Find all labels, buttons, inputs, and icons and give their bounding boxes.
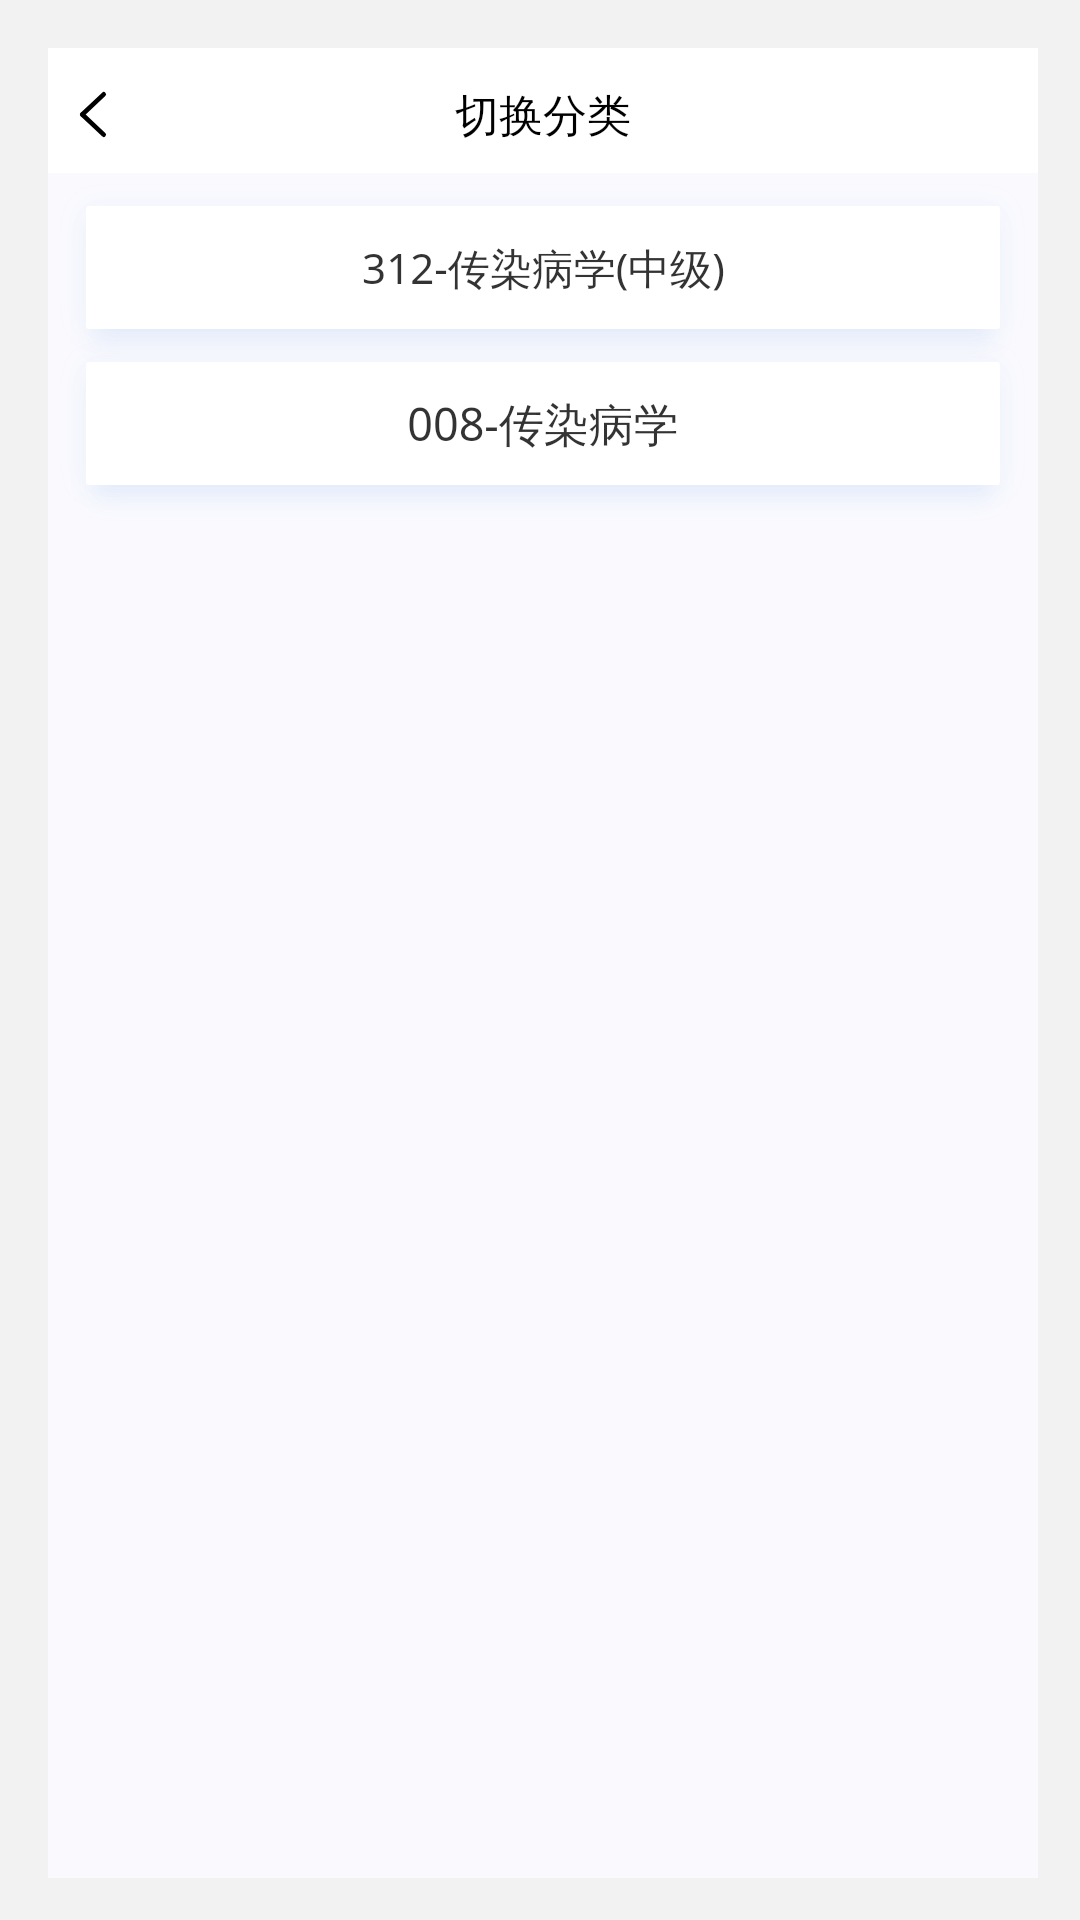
staticText: 312-传染病学(中级) xyxy=(362,239,725,296)
button[interactable]: Back xyxy=(48,69,138,159)
staticText: 008-传染病学 xyxy=(407,393,679,454)
button[interactable]: 008-传染病学 xyxy=(86,362,1000,485)
staticText: 切换分类 xyxy=(455,89,631,144)
button[interactable]: 312-传染病学(中级) xyxy=(86,206,1000,329)
